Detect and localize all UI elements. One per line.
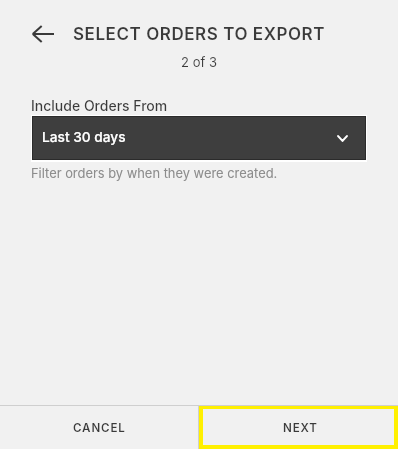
staticText: CANCEL	[73, 421, 126, 435]
button[interactable]: CANCEL	[0, 405, 199, 449]
button[interactable]: Back	[21, 12, 65, 56]
staticText: SELECT ORDERS TO EXPORT	[73, 24, 326, 45]
staticText: Filter orders by when they were created.	[31, 166, 278, 182]
button[interactable]: NEXT	[199, 405, 398, 449]
staticText: NEXT	[283, 421, 318, 435]
staticText: 2 of 3	[0, 54, 398, 70]
staticText: Include Orders From	[31, 97, 168, 114]
button[interactable]: Last 30 days	[33, 117, 365, 159]
staticText: Last 30 days	[42, 129, 126, 146]
